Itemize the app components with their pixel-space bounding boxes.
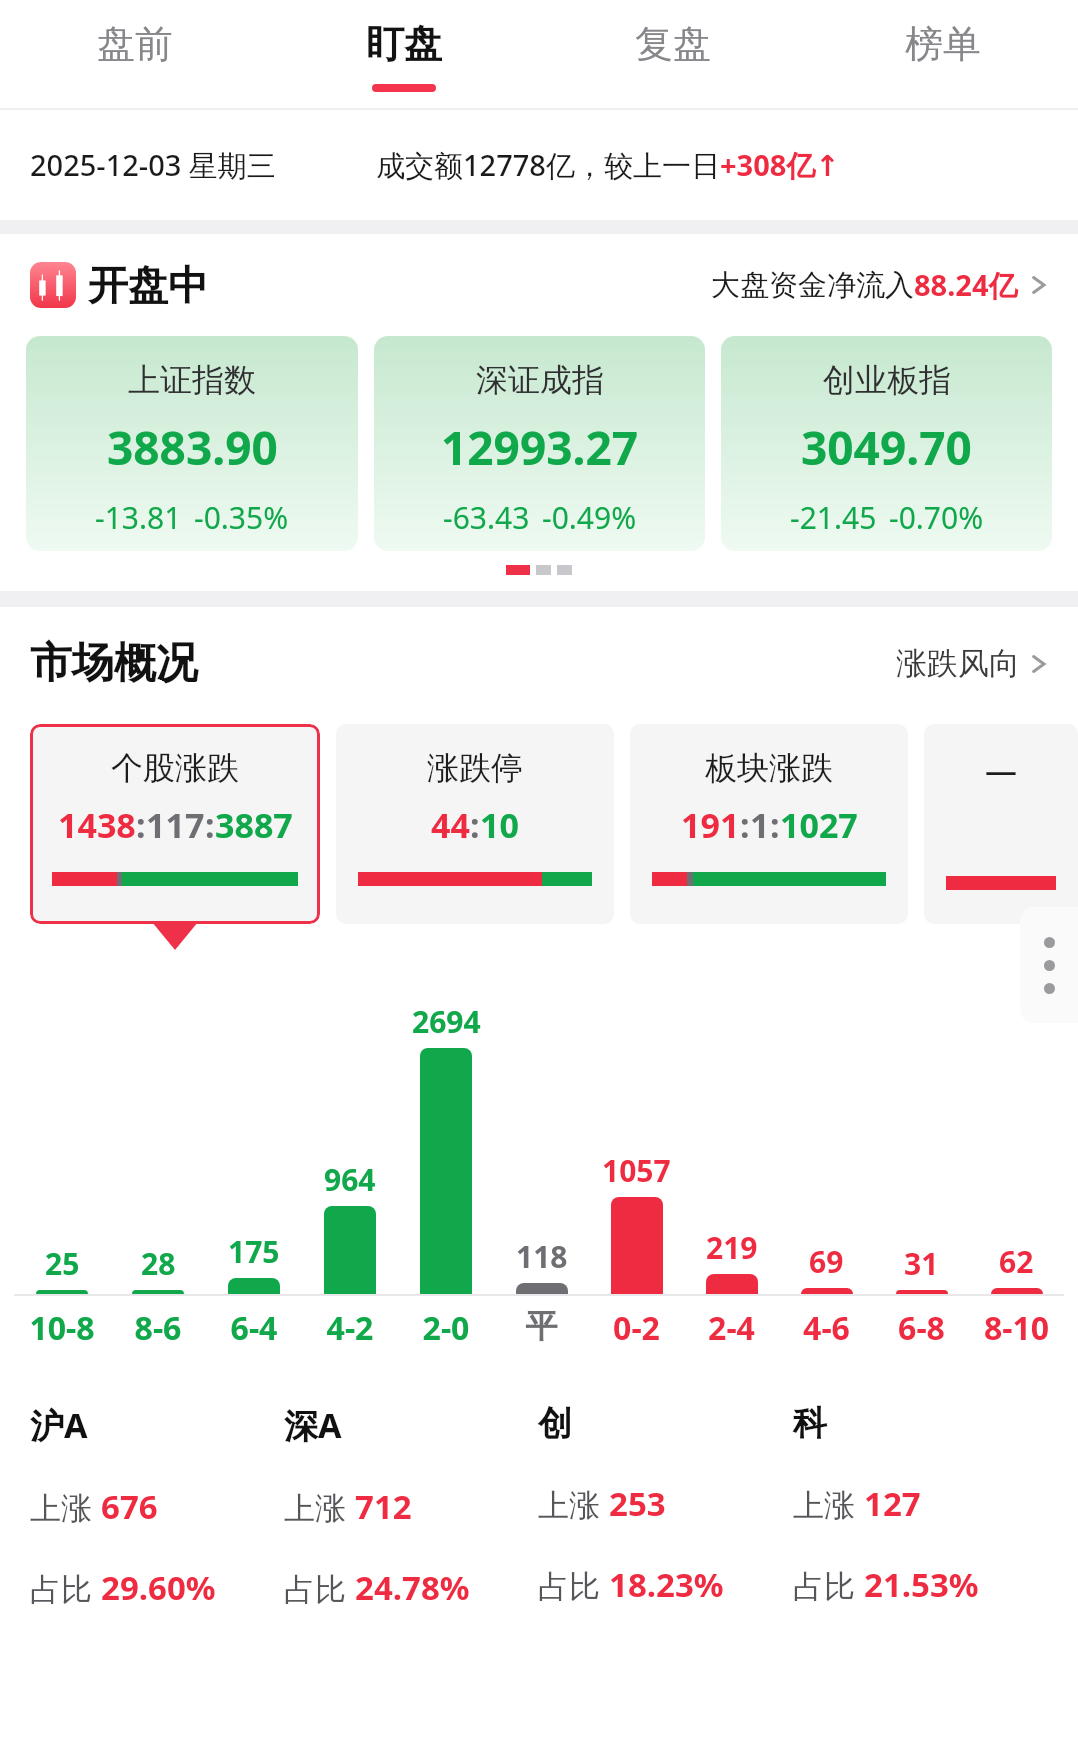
staticText: 175 bbox=[228, 1231, 280, 1272]
button[interactable]: 涨跌风向 bbox=[896, 644, 1048, 683]
staticText: 1438 bbox=[58, 802, 136, 848]
staticText: — bbox=[985, 748, 1018, 792]
staticText: : bbox=[470, 802, 480, 848]
staticText: 88.24亿 bbox=[914, 265, 1018, 305]
staticText: 1 bbox=[750, 802, 770, 848]
staticText: 44 bbox=[431, 802, 470, 848]
button[interactable]: 个股涨跌 bbox=[30, 724, 320, 924]
staticText: 29.60% bbox=[101, 1565, 216, 1610]
staticText: 219 bbox=[706, 1227, 758, 1268]
staticText: 科 bbox=[793, 1402, 827, 1445]
staticText: 2025-12-03 星期三 bbox=[30, 145, 276, 185]
staticText: 3049.70 bbox=[801, 416, 972, 479]
staticText: 深证成指 bbox=[476, 360, 604, 400]
staticText: 1027 bbox=[780, 802, 858, 848]
staticText: -13.81 bbox=[95, 497, 182, 538]
staticText: 上涨 bbox=[30, 1486, 101, 1528]
staticText: 个股涨跌 bbox=[111, 748, 239, 788]
staticText: 191 bbox=[681, 802, 740, 848]
staticText: 3887 bbox=[215, 802, 293, 848]
button[interactable]: More options bbox=[1020, 907, 1078, 1023]
staticText: +308亿↑ bbox=[720, 145, 840, 185]
staticText: 盘前 bbox=[97, 20, 173, 68]
staticText: 大盘资金净流入 bbox=[711, 267, 914, 304]
staticText: 31 bbox=[904, 1243, 939, 1284]
staticText: 712 bbox=[355, 1484, 412, 1529]
button[interactable]: 开盘中 bbox=[30, 260, 208, 310]
staticText: 118 bbox=[516, 1236, 568, 1277]
staticText: 21.53% bbox=[864, 1562, 979, 1607]
staticText: 6-8 bbox=[874, 1306, 969, 1350]
staticText: 开盘中 bbox=[88, 260, 208, 310]
staticText: 253 bbox=[609, 1481, 666, 1526]
button[interactable]: 上证指数 bbox=[26, 336, 358, 551]
staticText: 上证指数 bbox=[128, 360, 256, 400]
staticText: 964 bbox=[324, 1159, 376, 1200]
staticText: 深A bbox=[284, 1402, 342, 1448]
staticText: 沪A bbox=[30, 1402, 88, 1448]
staticText: -0.35% bbox=[194, 497, 289, 538]
staticText: 占比 bbox=[793, 1564, 864, 1606]
staticText: 8-10 bbox=[969, 1306, 1064, 1350]
staticText: 117 bbox=[146, 802, 205, 848]
staticText: 25 bbox=[45, 1243, 80, 1284]
staticText: 市场概况 bbox=[30, 637, 198, 690]
staticText: 上涨 bbox=[538, 1483, 609, 1525]
staticText: 上涨 bbox=[793, 1483, 864, 1525]
staticText: 成交额12778亿，较上一日 bbox=[376, 145, 720, 185]
staticText: : bbox=[740, 802, 750, 848]
button[interactable]: — bbox=[924, 724, 1078, 924]
staticText: -0.70% bbox=[889, 497, 984, 538]
staticText: 12993.27 bbox=[441, 416, 639, 479]
staticText: 涨跌风向 bbox=[896, 644, 1020, 683]
staticText: 69 bbox=[809, 1241, 844, 1282]
staticText: 10-8 bbox=[14, 1306, 110, 1350]
staticText: : bbox=[770, 802, 780, 848]
button[interactable]: 创业板指 bbox=[721, 336, 1052, 551]
staticText: 榜单 bbox=[905, 20, 981, 68]
button[interactable]: 大盘资金净流入 bbox=[711, 265, 1048, 305]
staticText: 盯盘 bbox=[366, 20, 442, 68]
staticText: 2694 bbox=[412, 1001, 481, 1042]
staticText: 创 bbox=[538, 1402, 572, 1445]
staticText: 1057 bbox=[602, 1150, 671, 1191]
staticText: 4-6 bbox=[779, 1306, 874, 1350]
staticText: 4-2 bbox=[302, 1306, 398, 1350]
staticText: 28 bbox=[141, 1243, 176, 1284]
button[interactable]: 板块涨跌 bbox=[630, 724, 908, 924]
staticText: 24.78% bbox=[355, 1565, 470, 1610]
staticText: 平 bbox=[494, 1306, 589, 1346]
staticText: -21.45 bbox=[790, 497, 877, 538]
button[interactable]: 榜单 bbox=[808, 0, 1078, 108]
button[interactable]: 涨跌停 bbox=[336, 724, 614, 924]
staticText: 复盘 bbox=[635, 20, 711, 68]
staticText: 2-4 bbox=[684, 1306, 779, 1350]
staticText: 涨跌停 bbox=[427, 748, 523, 788]
staticText: -63.43 bbox=[443, 497, 530, 538]
staticText: 创业板指 bbox=[823, 360, 951, 400]
staticText: 676 bbox=[101, 1484, 158, 1529]
staticText: 占比 bbox=[30, 1567, 101, 1609]
staticText: : bbox=[136, 802, 146, 848]
button[interactable]: 盘前 bbox=[0, 0, 269, 108]
staticText: 10 bbox=[480, 802, 519, 848]
staticText: 0-2 bbox=[589, 1306, 684, 1350]
staticText: 占比 bbox=[538, 1564, 609, 1606]
staticText: 8-6 bbox=[110, 1306, 206, 1350]
staticText: 127 bbox=[864, 1481, 921, 1526]
staticText: 18.23% bbox=[609, 1562, 724, 1607]
staticText: -0.49% bbox=[542, 497, 637, 538]
staticText: 板块涨跌 bbox=[705, 748, 833, 788]
staticText: : bbox=[205, 802, 215, 848]
staticText: 3883.90 bbox=[107, 416, 278, 479]
staticText: 占比 bbox=[284, 1567, 355, 1609]
staticText: 6-4 bbox=[206, 1306, 302, 1350]
staticText: 62 bbox=[999, 1241, 1034, 1282]
button[interactable]: 盯盘 bbox=[269, 0, 538, 108]
staticText: 上涨 bbox=[284, 1486, 355, 1528]
button[interactable]: 复盘 bbox=[538, 0, 808, 108]
staticText: 2-0 bbox=[398, 1306, 494, 1350]
button[interactable]: 深证成指 bbox=[374, 336, 705, 551]
